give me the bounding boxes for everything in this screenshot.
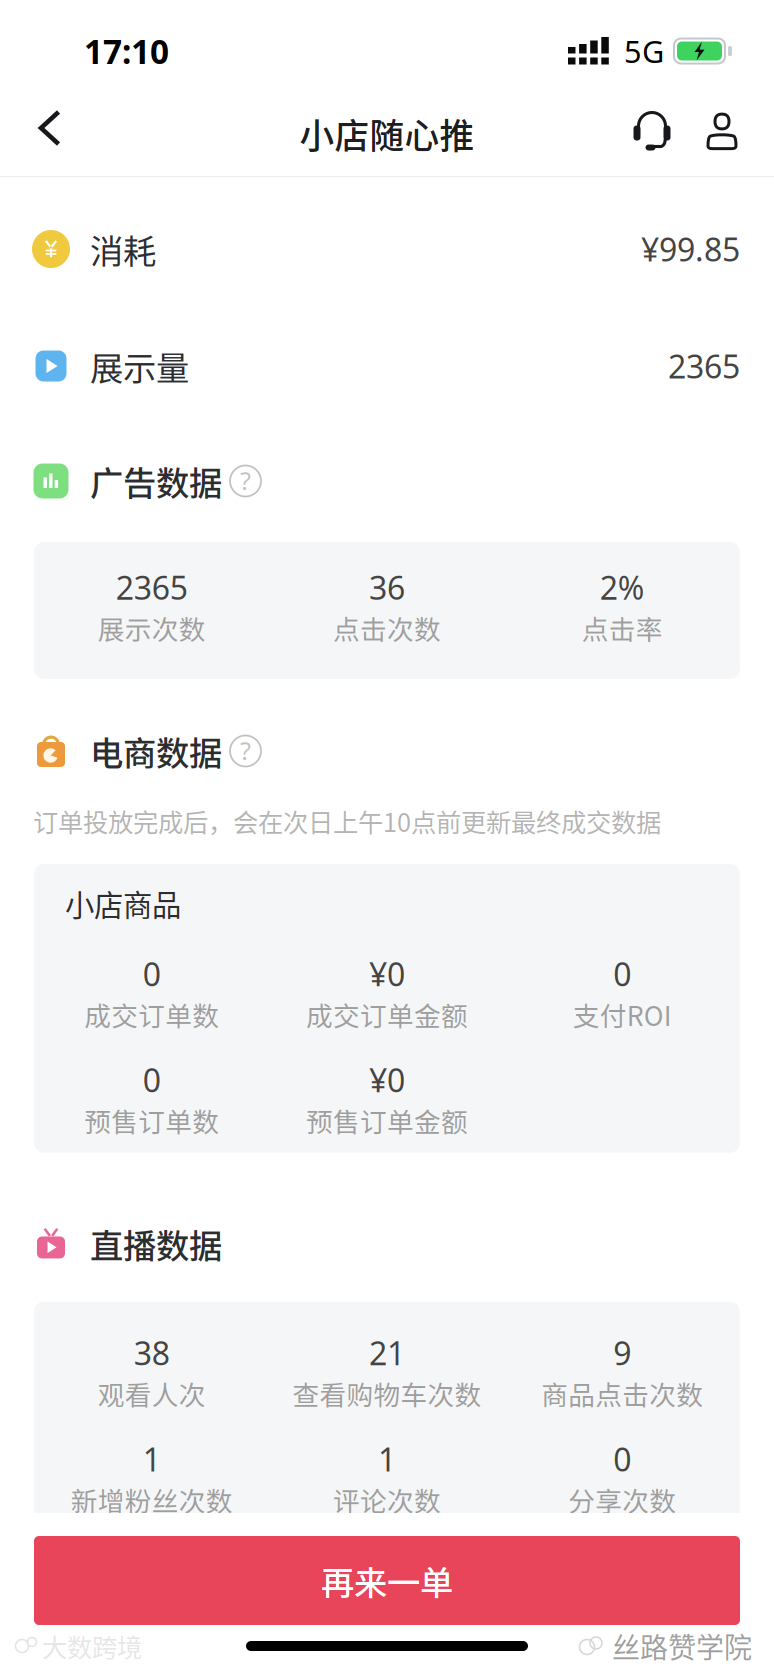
staticText: 点击次数: [333, 608, 441, 647]
staticText: 小店商品: [65, 882, 181, 924]
staticText: 5G: [624, 31, 664, 71]
staticText: 成交订单数: [84, 995, 219, 1034]
button[interactable]: 再来一单: [34, 1536, 740, 1625]
staticText: 广告数据: [90, 457, 222, 505]
staticText: 展示次数: [98, 608, 206, 647]
staticText: 21: [369, 1332, 405, 1374]
staticText: 点击率: [582, 608, 663, 647]
staticText: 17:10: [84, 29, 169, 73]
button[interactable]: Customer service: [616, 92, 688, 176]
staticText: ¥0: [369, 952, 405, 995]
staticText: 查看购物车次数: [292, 1374, 481, 1413]
staticText: 1: [143, 1438, 161, 1480]
staticText: 0: [143, 1059, 161, 1101]
staticText: 评论次数: [333, 1480, 441, 1519]
staticText: 观看人次: [98, 1374, 206, 1413]
staticText: 小店随心推: [299, 109, 474, 159]
staticText: 支付ROI: [573, 995, 672, 1034]
staticText: ¥99.85: [641, 228, 740, 270]
staticText: 再来一单: [321, 1556, 453, 1605]
staticText: 展示量: [90, 342, 189, 390]
staticText: 2%: [600, 566, 645, 608]
button[interactable]: 消耗: [0, 219, 774, 279]
staticText: 0: [613, 952, 631, 995]
staticText: 0: [143, 952, 161, 995]
staticText: 9: [613, 1332, 631, 1374]
staticText: 2365: [668, 345, 740, 387]
button[interactable]: Account: [688, 92, 756, 176]
staticText: ?: [240, 464, 251, 497]
staticText: 成交订单金额: [306, 995, 468, 1034]
staticText: 电商数据: [90, 727, 222, 775]
staticText: 预售订单金额: [306, 1101, 468, 1140]
button[interactable]: Back: [0, 92, 94, 176]
staticText: 丝路赞学院: [612, 1626, 752, 1666]
staticText: 1: [378, 1438, 396, 1480]
staticText: 2365: [116, 566, 188, 608]
staticText: 36: [369, 566, 405, 608]
staticText: 商品点击次数: [541, 1374, 703, 1413]
staticText: 订单投放完成后，会在次日上午10点前更新最终成交数据: [33, 803, 661, 839]
staticText: 38: [134, 1332, 170, 1374]
staticText: 消耗: [90, 225, 156, 273]
staticText: 分享次数: [568, 1480, 676, 1519]
staticText: 直播数据: [90, 1220, 222, 1268]
staticText: 大数跨境: [42, 1628, 142, 1664]
button[interactable]: 展示量: [0, 336, 774, 396]
staticText: 新增粉丝次数: [71, 1480, 233, 1519]
staticText: ?: [240, 734, 251, 767]
staticText: 预售订单数: [84, 1101, 219, 1140]
staticText: ¥0: [369, 1059, 405, 1101]
staticText: 0: [613, 1438, 631, 1480]
